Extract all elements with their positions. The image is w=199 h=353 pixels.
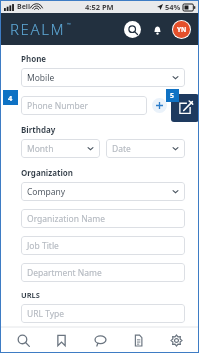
- button[interactable]: Edit: [171, 94, 199, 122]
- staticText: ™: [67, 21, 71, 27]
- staticText: Organization Name: [27, 213, 106, 225]
- staticText: Bell: [17, 2, 31, 12]
- staticText: 4:52 PM: [85, 2, 114, 12]
- button[interactable]: Job Title: [21, 236, 185, 255]
- button[interactable]: Documents: [123, 328, 153, 352]
- button[interactable]: Search: [124, 21, 141, 38]
- button[interactable]: Mobile: [21, 68, 185, 87]
- button[interactable]: Department Name: [21, 263, 185, 282]
- button[interactable]: Search: [8, 328, 38, 352]
- button[interactable]: Settings: [161, 328, 191, 352]
- staticText: Mobile: [27, 72, 55, 84]
- button[interactable]: Profile: [173, 21, 190, 38]
- button[interactable]: Company: [21, 182, 185, 201]
- staticText: Phone: [21, 53, 47, 64]
- button[interactable]: Messages: [85, 328, 115, 352]
- button[interactable]: Add phone number: [152, 98, 167, 113]
- staticText: YN: [177, 25, 187, 34]
- staticText: URL Type: [27, 308, 65, 320]
- button[interactable]: Bookmarks: [46, 328, 76, 352]
- button[interactable]: Date: [106, 139, 185, 158]
- staticText: URLS: [21, 290, 40, 300]
- staticText: Phone Number: [27, 100, 88, 112]
- staticText: Date: [112, 143, 131, 155]
- button[interactable]: Organization Name: [21, 209, 185, 228]
- staticText: Organization: [21, 167, 74, 178]
- staticText: Month: [27, 143, 54, 155]
- staticText: REALM: [10, 19, 66, 39]
- staticText: 54%: [165, 2, 181, 12]
- button[interactable]: URL Type: [21, 304, 185, 323]
- staticText: Department Name: [27, 267, 102, 279]
- staticText: 4: [8, 93, 13, 103]
- staticText: Job Title: [27, 240, 59, 252]
- button[interactable]: Month: [21, 139, 100, 158]
- staticText: 5: [170, 91, 175, 101]
- staticText: Birthday: [21, 124, 56, 135]
- button[interactable]: Notifications: [150, 23, 164, 37]
- button[interactable]: Phone Number: [21, 96, 147, 115]
- staticText: Company: [27, 186, 66, 198]
